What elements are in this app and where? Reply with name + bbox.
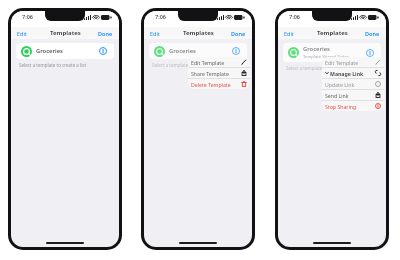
button[interactable]: Done xyxy=(225,29,252,38)
button[interactable]: More info xyxy=(97,45,109,57)
staticText: Edit xyxy=(284,30,294,37)
button[interactable]: Manage Link xyxy=(322,68,384,78)
staticText: Manage Link xyxy=(330,70,375,77)
staticText: Done xyxy=(98,30,113,37)
button[interactable]: Groceries xyxy=(16,43,114,59)
staticText: Templates xyxy=(183,29,214,37)
button[interactable]: Done xyxy=(92,29,119,38)
staticText: Groceries xyxy=(303,45,330,53)
staticText: 7:06 xyxy=(155,13,166,20)
button[interactable]: Delete Template xyxy=(188,79,250,89)
staticText: Send Link xyxy=(325,92,375,99)
staticText: Templates xyxy=(317,29,348,37)
staticText: Done xyxy=(231,30,246,37)
button[interactable]: More info xyxy=(364,47,376,59)
staticText: 7:06 xyxy=(22,13,33,20)
button[interactable]: Done xyxy=(359,29,386,38)
button[interactable]: More info xyxy=(230,45,242,57)
button[interactable]: Send Link xyxy=(322,90,384,100)
staticText: Done xyxy=(365,30,380,37)
staticText: Templates xyxy=(50,29,81,37)
button[interactable]: Stop Sharing xyxy=(322,101,384,111)
staticText: Share Template xyxy=(191,70,241,77)
staticText: Select a template to create a list xyxy=(152,62,220,68)
staticText: Edit Template xyxy=(191,59,241,66)
button[interactable]: Edit xyxy=(144,29,166,38)
staticText: Groceries xyxy=(36,47,63,55)
staticText: Groceries xyxy=(169,47,196,55)
button[interactable]: Share Template xyxy=(188,68,250,78)
staticText: Delete Template xyxy=(191,81,241,88)
button[interactable]: Edit xyxy=(11,29,33,38)
staticText: Template Shared Today xyxy=(303,54,349,60)
staticText: Edit xyxy=(17,30,27,37)
staticText: Stop Sharing xyxy=(325,103,375,110)
staticText: Update Link xyxy=(325,81,375,88)
button[interactable]: Groceries xyxy=(283,43,381,62)
staticText: 7:06 xyxy=(289,13,300,20)
button[interactable]: Groceries xyxy=(149,43,247,59)
staticText: Edit xyxy=(150,30,160,37)
button[interactable]: Update Link xyxy=(322,79,384,89)
staticText: Select a template to create a list xyxy=(19,62,87,68)
staticText: Edit Template xyxy=(325,59,375,66)
button[interactable]: Edit Template xyxy=(188,57,250,67)
staticText: Select a template to create a list xyxy=(286,65,354,71)
button[interactable]: Edit Template xyxy=(322,57,384,67)
button[interactable]: Edit xyxy=(278,29,300,38)
